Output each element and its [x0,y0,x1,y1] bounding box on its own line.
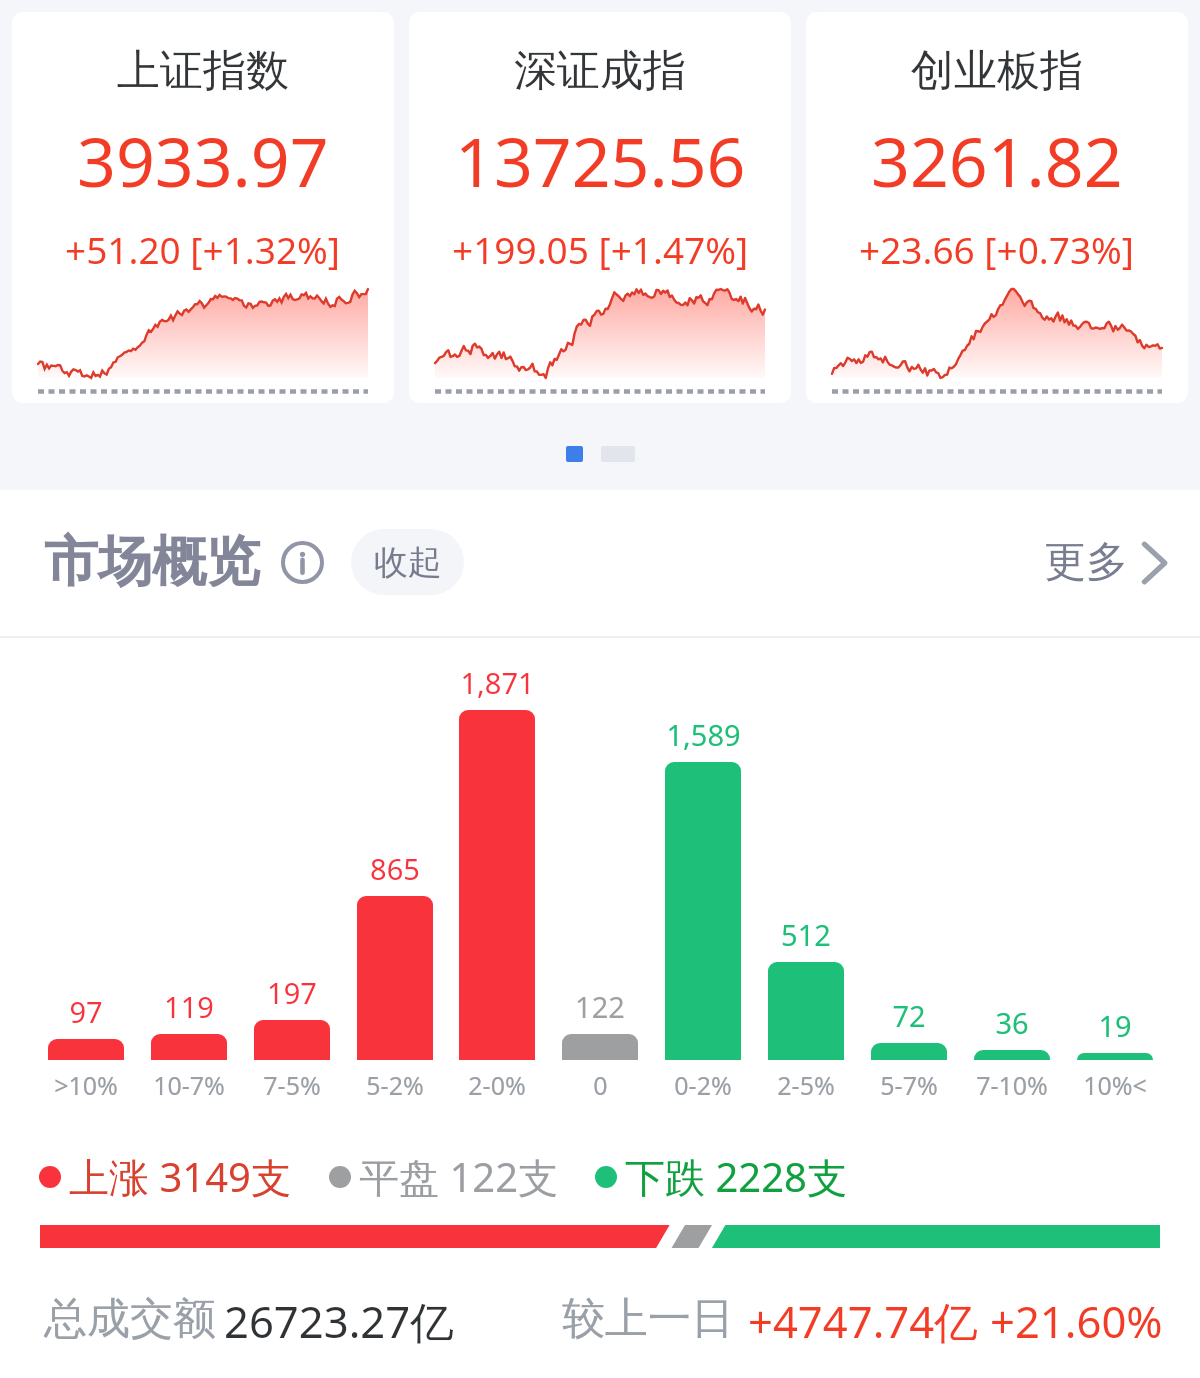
staticText: 更多 [1044,536,1128,589]
staticText: 3261.82 [871,114,1123,207]
staticText: 上证指数 [117,44,289,98]
staticText: 3933.97 [77,114,329,207]
staticText: 5-2% [366,1068,424,1102]
staticText: 深证成指 [514,44,686,98]
button[interactable] [768,962,844,1060]
button[interactable]: Page 1 [566,446,583,462]
staticText: 0-2% [674,1068,732,1102]
button[interactable] [871,1043,947,1060]
button[interactable]: 下跌 2228支 [595,1149,847,1204]
staticText: 119 [164,987,214,1026]
button[interactable]: 更多 [1044,536,1166,589]
staticText: 7-10% [976,1068,1048,1102]
staticText: 72 [892,996,926,1035]
staticText: 10-7% [153,1068,225,1102]
button[interactable]: 创业板指 [806,12,1188,403]
staticText: 平盘 122支 [359,1149,559,1204]
staticText: +199.05 [+1.47%] [452,224,749,274]
button[interactable]: 上证指数 [12,12,394,403]
staticText: 13725.56 [455,114,746,207]
staticText: 97 [69,992,103,1031]
staticText: 26723.27亿 [224,1291,454,1347]
button[interactable]: 上涨 3149支 [39,1149,291,1204]
staticText: 0 [593,1068,608,1102]
staticText: 总成交额 [44,1292,216,1346]
button[interactable] [48,1039,124,1060]
staticText: 865 [370,849,420,888]
staticText: 下跌 2228支 [625,1149,847,1204]
staticText: 36 [995,1003,1029,1042]
button[interactable]: 深证成指 [409,12,791,403]
button[interactable]: Information [281,541,324,584]
staticText: >10% [54,1068,118,1102]
button[interactable] [459,710,535,1060]
button[interactable] [974,1050,1050,1060]
staticText: 1,871 [460,663,535,702]
staticText: 5-7% [880,1068,938,1102]
staticText: 创业板指 [911,44,1083,98]
staticText: +23.66 [+0.73%] [859,224,1135,274]
staticText: 市场概览 [44,528,260,596]
staticText: 512 [781,915,831,954]
button[interactable] [357,896,433,1060]
button[interactable] [562,1034,638,1060]
staticText: 较上一日 [562,1292,734,1346]
button[interactable]: 平盘 122支 [329,1149,559,1204]
staticText: +4747.74亿 [748,1291,978,1347]
button[interactable] [665,762,741,1060]
button[interactable] [254,1020,330,1060]
staticText: 7-5% [263,1068,321,1102]
staticText: 收起 [374,541,442,584]
staticText: +51.20 [+1.32%] [65,224,341,274]
staticText: 197 [267,973,317,1012]
staticText: 2-5% [777,1068,835,1102]
staticText: 10%< [1083,1068,1147,1102]
staticText: 上涨 3149支 [69,1149,291,1204]
button[interactable] [151,1034,227,1060]
staticText: 19 [1098,1006,1132,1045]
button[interactable]: 收起 [351,529,464,595]
staticText: 2-0% [468,1068,526,1102]
staticText: 122 [575,987,625,1026]
staticText: +21.60% [990,1291,1163,1347]
button[interactable] [1077,1053,1153,1060]
staticText: 1,589 [666,715,741,754]
